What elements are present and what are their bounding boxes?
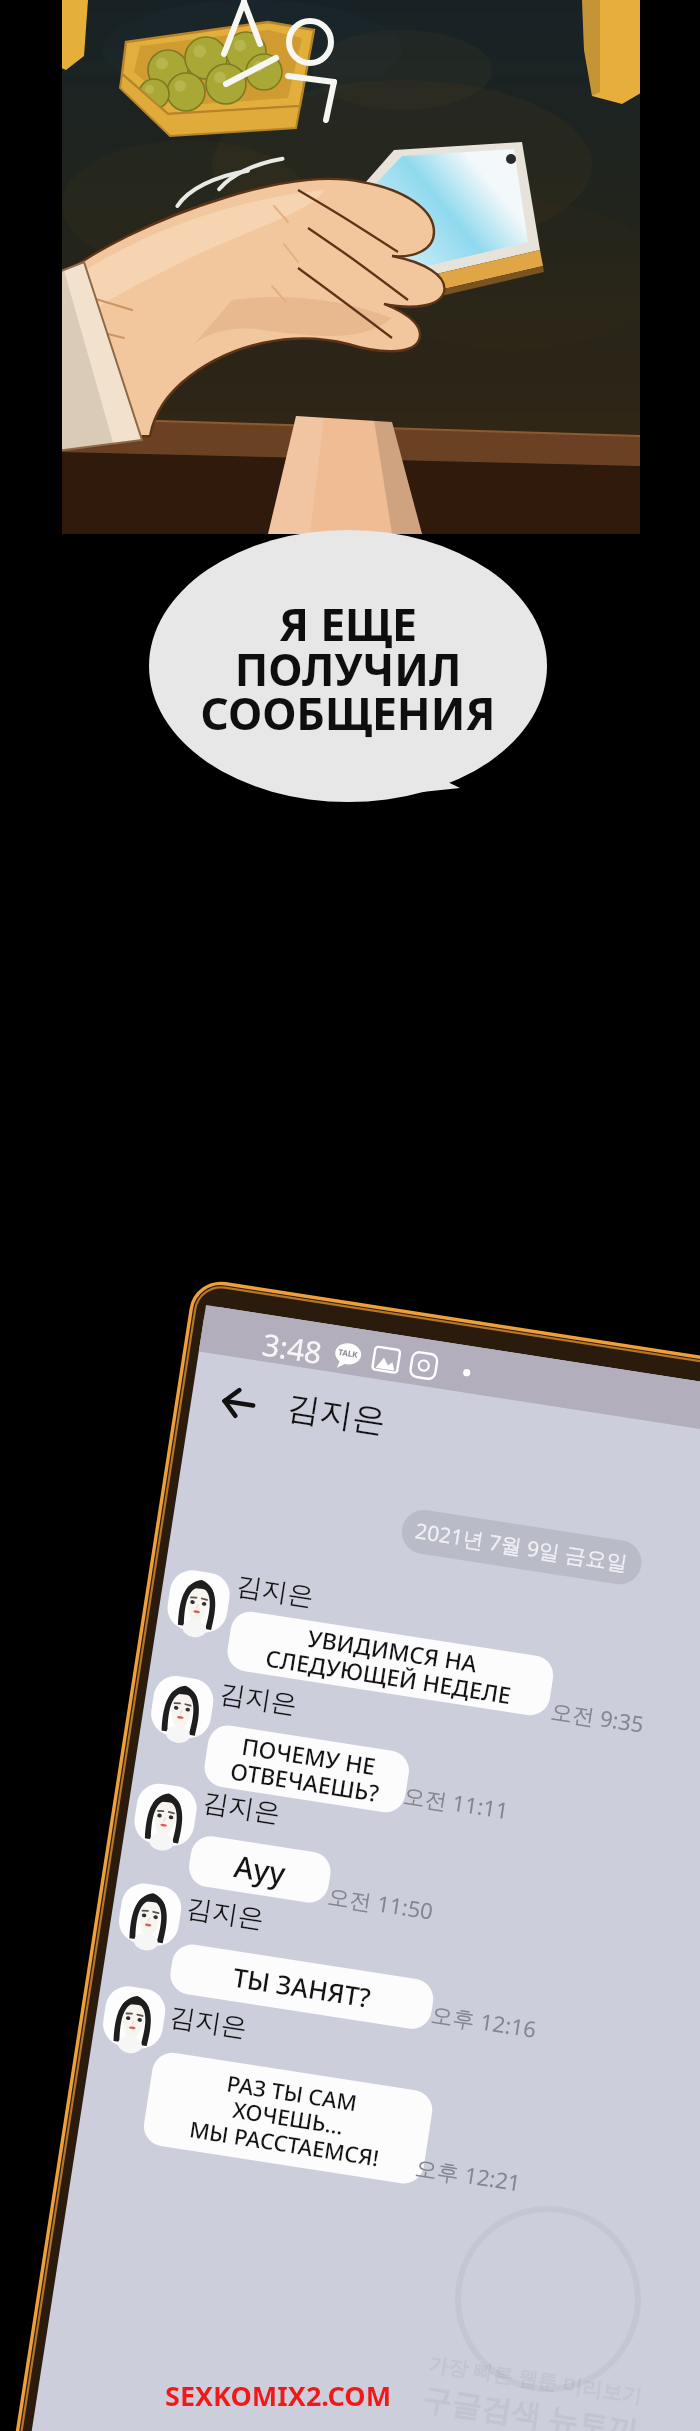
button[interactable]: Comic page (0, 0, 700, 2431)
